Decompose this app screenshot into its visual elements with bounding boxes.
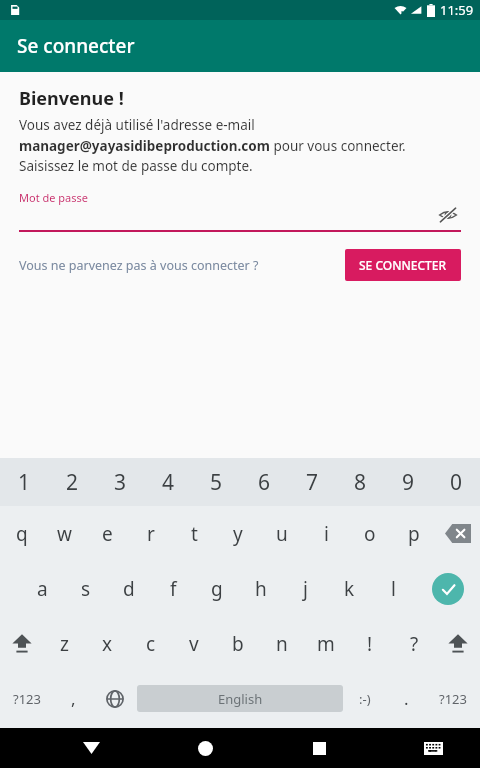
button[interactable]: f bbox=[151, 561, 195, 616]
button[interactable]: h bbox=[239, 561, 283, 616]
staticText: i bbox=[324, 521, 329, 547]
button[interactable]: 9 bbox=[384, 458, 432, 506]
button[interactable]: 7 bbox=[288, 458, 336, 506]
button[interactable]: w bbox=[43, 506, 86, 561]
staticText: o bbox=[364, 521, 376, 547]
staticText: b bbox=[232, 631, 244, 657]
button[interactable]: Clavier bbox=[409, 728, 457, 768]
button[interactable]: t bbox=[172, 506, 216, 561]
button[interactable]: Majuscule bbox=[436, 616, 480, 671]
staticText: . bbox=[404, 687, 409, 710]
staticText: ?123 bbox=[13, 690, 41, 708]
button[interactable]: a bbox=[21, 561, 64, 616]
staticText: Bienvenue ! bbox=[19, 86, 124, 111]
button[interactable]: s bbox=[64, 561, 107, 616]
button[interactable]: Retour bbox=[67, 728, 115, 768]
button[interactable]: n bbox=[260, 616, 304, 671]
button[interactable]: 0 bbox=[432, 458, 480, 506]
button[interactable]: u bbox=[260, 506, 304, 561]
staticText: f bbox=[170, 576, 177, 602]
staticText: ? bbox=[410, 631, 419, 657]
staticText: p bbox=[408, 521, 420, 547]
button[interactable]: 4 bbox=[144, 458, 192, 506]
staticText: e bbox=[102, 521, 113, 547]
button[interactable]: c bbox=[129, 616, 172, 671]
staticText: d bbox=[123, 576, 135, 602]
staticText: n bbox=[276, 631, 288, 657]
button[interactable]: English bbox=[137, 671, 343, 726]
button[interactable]: ! bbox=[348, 616, 392, 671]
staticText: 6 bbox=[258, 468, 271, 497]
button[interactable]: e bbox=[86, 506, 129, 561]
staticText: ?123 bbox=[439, 690, 467, 708]
staticText: x bbox=[102, 631, 113, 657]
staticText: 5 bbox=[210, 468, 223, 497]
staticText: Vous ne parvenez pas à vous connecter ? bbox=[19, 257, 259, 274]
button[interactable]: 6 bbox=[240, 458, 288, 506]
button[interactable]: ?123 bbox=[426, 671, 480, 726]
staticText: 7 bbox=[306, 468, 319, 497]
staticText: u bbox=[276, 521, 288, 547]
button[interactable]: 3 bbox=[96, 458, 144, 506]
button[interactable]: Mot de passe bbox=[19, 190, 461, 232]
button[interactable]: 2 bbox=[48, 458, 96, 506]
button[interactable]: , bbox=[54, 671, 93, 726]
button[interactable]: . bbox=[387, 671, 426, 726]
staticText: 1 bbox=[18, 468, 31, 497]
button[interactable]: Afficher le mot de passe bbox=[435, 202, 461, 228]
staticText: y bbox=[233, 521, 243, 547]
staticText: g bbox=[211, 576, 223, 602]
button[interactable]: 1 bbox=[0, 458, 48, 506]
staticText: l bbox=[391, 576, 396, 602]
button[interactable]: p bbox=[392, 506, 436, 561]
staticText: 4 bbox=[162, 468, 175, 497]
button[interactable]: :-) bbox=[343, 671, 387, 726]
button[interactable]: Vous ne parvenez pas à vous connecter ? bbox=[19, 251, 259, 280]
button[interactable]: z bbox=[43, 616, 86, 671]
staticText: :-) bbox=[359, 690, 371, 708]
button[interactable]: m bbox=[304, 616, 348, 671]
button[interactable]: x bbox=[86, 616, 129, 671]
staticText: 8 bbox=[354, 468, 367, 497]
button[interactable]: i bbox=[304, 506, 348, 561]
button[interactable]: Changer de langue bbox=[93, 671, 137, 726]
staticText: 2 bbox=[66, 468, 79, 497]
staticText: z bbox=[60, 631, 69, 657]
button[interactable]: g bbox=[195, 561, 239, 616]
staticText: 0 bbox=[450, 468, 463, 497]
staticText: Se connecter bbox=[17, 33, 135, 59]
button[interactable]: j bbox=[283, 561, 327, 616]
staticText: c bbox=[146, 631, 156, 657]
staticText: r bbox=[147, 521, 155, 547]
button[interactable]: Valider bbox=[415, 561, 480, 616]
button[interactable]: 5 bbox=[192, 458, 240, 506]
button[interactable]: v bbox=[172, 616, 216, 671]
staticText: w bbox=[57, 521, 72, 547]
staticText: 11:59 bbox=[440, 1, 474, 19]
button[interactable]: q bbox=[0, 506, 43, 561]
staticText: k bbox=[344, 576, 355, 602]
button[interactable]: ?123 bbox=[0, 671, 54, 726]
button[interactable]: o bbox=[348, 506, 392, 561]
button[interactable]: SE CONNECTER bbox=[345, 249, 461, 281]
button[interactable]: 8 bbox=[336, 458, 384, 506]
button[interactable]: Applications récentes bbox=[295, 728, 343, 768]
button[interactable]: k bbox=[327, 561, 371, 616]
staticText: Mot de passe bbox=[19, 190, 88, 205]
staticText: a bbox=[37, 576, 48, 602]
staticText: SE CONNECTER bbox=[359, 257, 447, 273]
button[interactable]: y bbox=[216, 506, 260, 561]
staticText: 9 bbox=[402, 468, 415, 497]
button[interactable]: d bbox=[107, 561, 151, 616]
button[interactable]: Retour arrière bbox=[436, 506, 480, 561]
button[interactable]: Accueil bbox=[181, 728, 229, 768]
button[interactable]: ? bbox=[392, 616, 436, 671]
staticText: h bbox=[255, 576, 267, 602]
button[interactable]: b bbox=[216, 616, 260, 671]
staticText: English bbox=[218, 690, 263, 708]
button[interactable]: l bbox=[371, 561, 415, 616]
button[interactable]: r bbox=[129, 506, 172, 561]
staticText: m bbox=[317, 631, 335, 657]
staticText: , bbox=[71, 687, 76, 710]
button[interactable]: Majuscule bbox=[0, 616, 43, 671]
